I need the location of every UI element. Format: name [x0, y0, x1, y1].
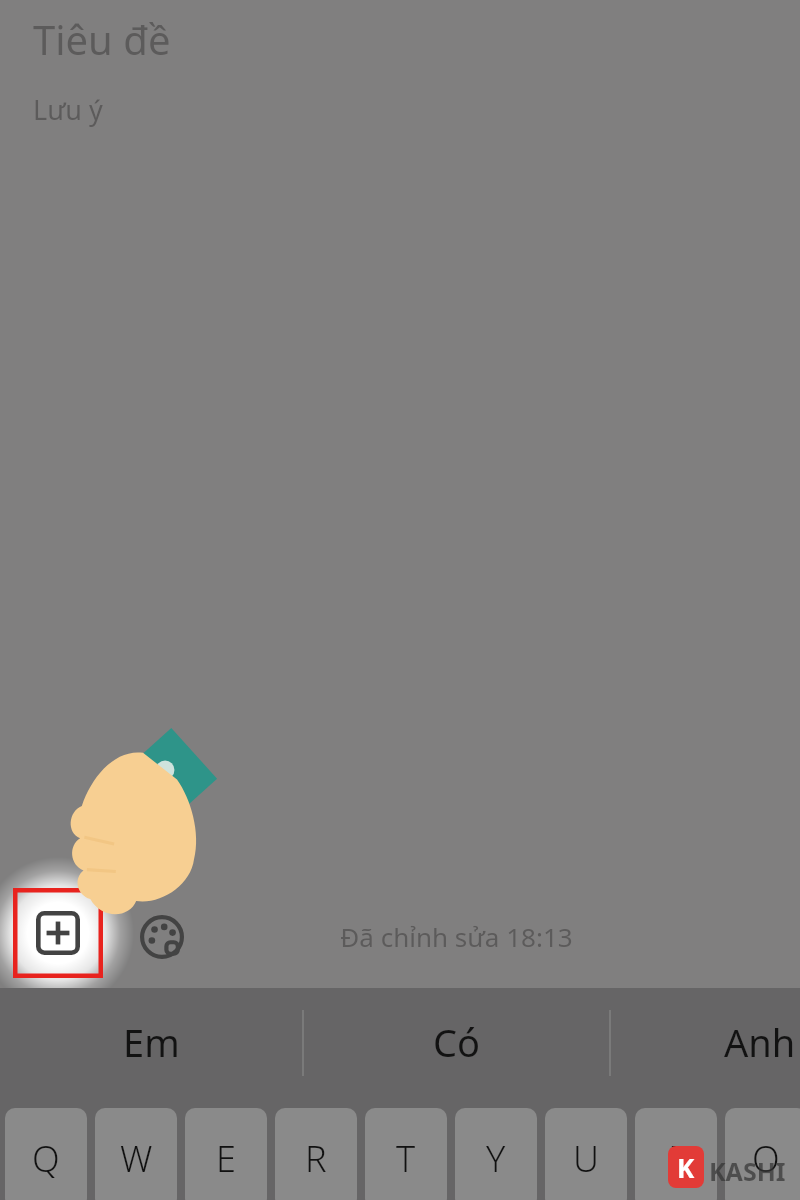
staticText: KASHI [709, 1154, 786, 1188]
button[interactable]: O [725, 1108, 800, 1200]
button[interactable]: Q [5, 1108, 87, 1200]
staticText: K [677, 1150, 695, 1185]
staticText: W [120, 1134, 153, 1183]
staticText: I [670, 1134, 682, 1183]
button[interactable]: Change colour [131, 906, 193, 968]
staticText: T [396, 1134, 416, 1183]
button[interactable]: R [275, 1108, 357, 1200]
staticText: Y [486, 1134, 506, 1183]
staticText: O [752, 1134, 780, 1183]
button[interactable]: W [95, 1108, 177, 1200]
button[interactable]: Anh [610, 988, 800, 1096]
button[interactable]: T [365, 1108, 447, 1200]
staticText: Tiêu đề [33, 12, 171, 66]
staticText: Có [433, 1016, 481, 1068]
staticText: R [305, 1134, 327, 1183]
button[interactable]: Em [0, 988, 303, 1096]
button[interactable]: I [635, 1108, 717, 1200]
staticText: Q [32, 1134, 60, 1183]
staticText: E [216, 1134, 236, 1183]
button[interactable]: Tiêu đề [0, 0, 800, 78]
staticText: Lưu ý [33, 91, 103, 128]
button[interactable]: Có [303, 988, 610, 1096]
button[interactable]: E [185, 1108, 267, 1200]
button[interactable]: U [545, 1108, 627, 1200]
staticText: Em [123, 1016, 180, 1068]
button[interactable]: Y [455, 1108, 537, 1200]
staticText: Anh [724, 1016, 796, 1068]
button[interactable]: Add [13, 888, 103, 978]
staticText: U [573, 1134, 599, 1183]
staticText: Đã chỉnh sửa 18:13 [340, 919, 573, 954]
